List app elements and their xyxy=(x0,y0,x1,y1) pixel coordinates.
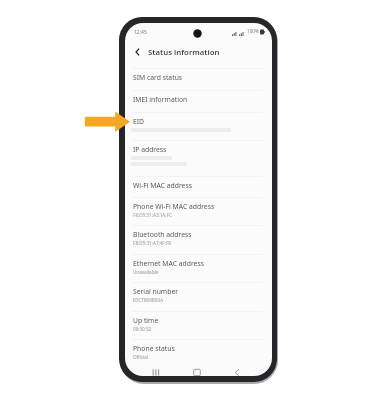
staticText: Status information xyxy=(148,47,220,58)
button[interactable]: IMEI information xyxy=(125,90,272,112)
staticText: Official xyxy=(133,354,149,360)
button[interactable]: SIM card status xyxy=(125,68,272,90)
button[interactable]: Navigate up xyxy=(131,45,145,59)
button[interactable]: Wi-Fi MAC address xyxy=(125,176,272,197)
staticText: 12:45 xyxy=(134,29,147,36)
staticText: Phone Wi-Fi MAC address xyxy=(133,202,215,211)
button[interactable]: Phone Wi-Fi MAC address xyxy=(125,197,272,225)
button[interactable]: Phone status xyxy=(125,339,272,367)
button[interactable]: Bluetooth address xyxy=(125,225,272,254)
staticText: Bluetooth address xyxy=(133,230,192,239)
staticText: Ethernet MAC address xyxy=(133,259,204,268)
staticText: R3CT809B0XA xyxy=(133,297,164,303)
button[interactable]: Serial number xyxy=(125,282,272,311)
staticText: Up time xyxy=(133,316,159,325)
button[interactable]: Home xyxy=(186,363,207,376)
staticText: Serial number xyxy=(133,287,179,296)
staticText: Unavailable xyxy=(133,269,159,275)
staticText: 100% xyxy=(247,28,259,34)
staticText: F8:D5:31:A3:1A:FC xyxy=(133,212,172,218)
button[interactable]: IP address xyxy=(125,140,272,176)
staticText: IP address xyxy=(133,145,167,154)
button[interactable]: Up time xyxy=(125,311,272,339)
button[interactable]: EID xyxy=(125,112,272,140)
staticText: IMEI information xyxy=(133,95,188,104)
staticText: Wi-Fi MAC address xyxy=(133,181,192,190)
button[interactable]: Back xyxy=(226,363,247,376)
staticText: 09:30:32 xyxy=(133,326,152,332)
staticText: Phone status xyxy=(133,344,175,353)
button[interactable]: Ethernet MAC address xyxy=(125,254,272,282)
staticText: EID xyxy=(133,117,145,126)
button[interactable]: Recent apps xyxy=(145,363,166,376)
staticText: SIM card status xyxy=(133,73,183,82)
staticText: F8:D5:31:A7:4F:F8 xyxy=(133,240,171,246)
